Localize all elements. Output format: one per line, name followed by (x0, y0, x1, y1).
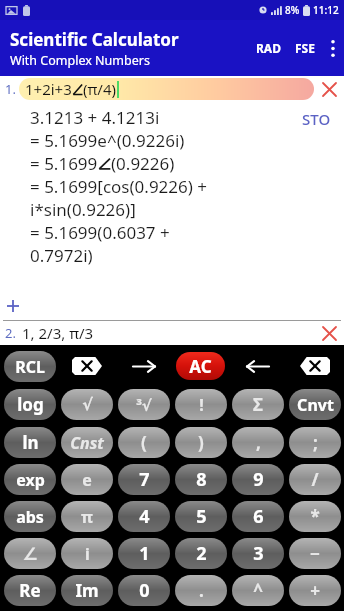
button[interactable]: 9 (232, 464, 284, 495)
staticText: 2 (196, 541, 207, 566)
button[interactable]: Cnst (61, 427, 113, 458)
button[interactable]: Move left (242, 355, 274, 377)
button[interactable]: , (232, 427, 284, 458)
staticText: 2. (5, 324, 16, 342)
button[interactable]: log (4, 389, 56, 420)
staticText: * (310, 505, 320, 528)
staticText: = 5.1699 (30, 152, 98, 175)
staticText: √ (82, 395, 93, 414)
staticText: Scientific Calculator (10, 28, 179, 51)
button[interactable]: * (289, 501, 341, 532)
button[interactable]: ∠ (4, 538, 56, 569)
button[interactable]: ³√ (118, 389, 170, 420)
staticText: 3.1213 + 4.1213i (30, 106, 160, 129)
button[interactable]: STO (299, 106, 334, 132)
button[interactable]: − (289, 538, 341, 569)
button[interactable]: ^ (232, 575, 284, 606)
staticText: ∠ (22, 544, 38, 564)
staticText: ³√ (136, 395, 152, 415)
staticText: (0.9226) (111, 152, 175, 175)
button[interactable]: / (289, 464, 341, 495)
staticText: 8% (285, 3, 300, 17)
button[interactable]: Delete entry 1 (314, 76, 344, 102)
staticText: + (310, 579, 320, 602)
staticText: = 5.1699(0.6037 + (30, 221, 170, 244)
button[interactable]: ( (118, 427, 170, 458)
button[interactable]: AC (176, 352, 225, 380)
staticText: / (311, 468, 319, 491)
button[interactable]: ln (4, 427, 56, 458)
button[interactable]: 2. (0, 321, 344, 345)
staticText: RAD (256, 40, 281, 56)
staticText: STO (302, 109, 331, 129)
staticText: − (310, 542, 320, 565)
button[interactable]: 3 (232, 538, 284, 569)
staticText: Cnvt (297, 394, 334, 416)
button[interactable]: . (175, 575, 227, 606)
button[interactable]: Delete left (72, 357, 102, 375)
button[interactable]: 6 (232, 501, 284, 532)
staticText: e (82, 469, 92, 491)
staticText: 6 (253, 504, 264, 529)
button[interactable]: abs (4, 501, 56, 532)
button[interactable]: π (61, 501, 113, 532)
staticText: 5 (196, 504, 207, 529)
staticText: exp (16, 469, 45, 491)
button[interactable]: + (289, 575, 341, 606)
button[interactable]: Delete entry 2 (314, 321, 344, 345)
staticText: Σ (253, 393, 263, 416)
button[interactable]: 1 (118, 538, 170, 569)
button[interactable]: e (61, 464, 113, 495)
staticText: 11:12 (313, 3, 339, 17)
staticText: abs (16, 506, 44, 528)
button[interactable]: ; (289, 427, 341, 458)
staticText: log (17, 393, 44, 416)
staticText: 4 (139, 504, 150, 529)
staticText: . (199, 579, 204, 602)
staticText: 1 (139, 541, 150, 566)
button[interactable]: 0 (118, 575, 170, 606)
staticText: 8 (196, 467, 207, 492)
button[interactable]: ! (175, 389, 227, 420)
button[interactable]: RCL (4, 351, 56, 382)
button[interactable]: ) (175, 427, 227, 458)
button[interactable]: Add entry (4, 297, 22, 315)
staticText: (π/4) (83, 79, 116, 99)
button[interactable]: Move right (128, 355, 160, 377)
button[interactable]: Im (61, 575, 113, 606)
staticText: i*sin(0.9226)] (30, 198, 136, 221)
staticText: 7 (139, 467, 150, 492)
staticText: Re (19, 579, 41, 602)
button[interactable]: Delete right (300, 357, 330, 375)
button[interactable]: Re (4, 575, 56, 606)
button[interactable]: 7 (118, 464, 170, 495)
staticText: ; (313, 431, 318, 454)
button[interactable]: 4 (118, 501, 170, 532)
staticText: ln (22, 431, 39, 454)
button[interactable]: Σ (232, 389, 284, 420)
staticText: ( (141, 431, 147, 454)
button[interactable]: 5 (175, 501, 227, 532)
button[interactable]: √ (61, 389, 113, 420)
staticText: 0.7972i) (30, 244, 93, 267)
button[interactable]: Cnvt (289, 389, 341, 420)
staticText: 1+2i+3 (25, 79, 72, 99)
button[interactable]: RAD (249, 32, 288, 64)
button[interactable]: FSE (288, 32, 322, 64)
staticText: FSE (295, 40, 315, 56)
staticText: 3 (253, 541, 264, 566)
staticText: π (81, 506, 93, 528)
staticText: ! (199, 394, 204, 416)
button[interactable]: 8 (175, 464, 227, 495)
button[interactable]: More options (322, 28, 344, 68)
staticText: , (256, 431, 261, 454)
staticText: RCL (15, 356, 45, 378)
button[interactable]: i (61, 538, 113, 569)
staticText: Im (75, 579, 99, 602)
staticText: ) (198, 431, 204, 454)
button[interactable]: 1. (0, 76, 344, 102)
button[interactable]: exp (4, 464, 56, 495)
staticText: = 5.1699[cos(0.9226) + (30, 175, 208, 198)
staticText: Cnst (70, 432, 104, 454)
button[interactable]: 2 (175, 538, 227, 569)
